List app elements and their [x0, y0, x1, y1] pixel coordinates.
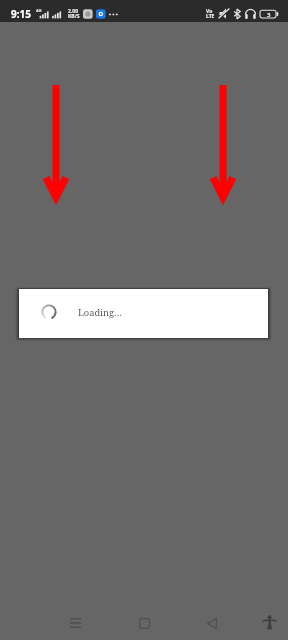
button[interactable]: Home — [120, 605, 168, 640]
button[interactable]: Back — [188, 605, 236, 640]
button[interactable]: Loading… — [19, 289, 268, 338]
staticText: Vo — [206, 8, 213, 15]
staticText: Loading… — [78, 306, 123, 319]
button[interactable]: Accessibility — [252, 604, 288, 640]
staticText: LTE — [206, 13, 215, 20]
staticText: 3 — [267, 11, 271, 19]
staticText: 4G — [36, 8, 42, 14]
staticText: 2.00 — [68, 8, 78, 15]
button[interactable]: Recent apps — [51, 605, 99, 640]
staticText: KB/S — [68, 13, 80, 20]
staticText: 9:15 — [11, 7, 31, 21]
